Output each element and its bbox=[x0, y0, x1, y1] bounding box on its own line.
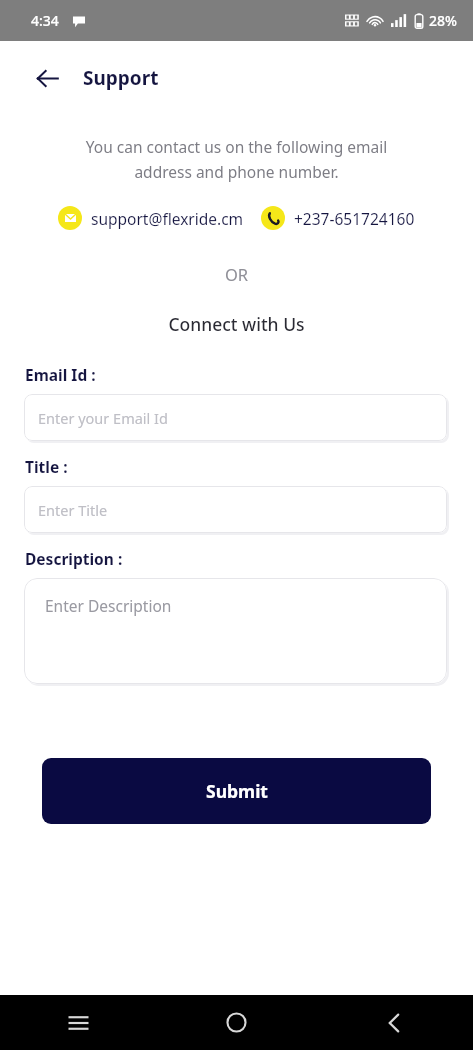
staticText: Submit bbox=[206, 779, 268, 803]
staticText: Enter your Email Id bbox=[38, 408, 168, 428]
staticText: 4:34 bbox=[31, 11, 59, 30]
button[interactable]: Recent apps bbox=[0, 995, 157, 1050]
staticText: Enter Title bbox=[38, 500, 108, 520]
button[interactable]: Home bbox=[157, 995, 315, 1050]
button[interactable]: Enter Title bbox=[24, 486, 447, 533]
button[interactable]: Back bbox=[22, 53, 72, 103]
button[interactable]: Submit bbox=[42, 758, 431, 824]
staticText: Support bbox=[83, 65, 159, 91]
staticText: Enter Description bbox=[45, 595, 172, 616]
staticText: OR bbox=[0, 263, 473, 285]
staticText: 28% bbox=[429, 11, 457, 30]
staticText: +237-651724160 bbox=[294, 208, 415, 229]
staticText: You can contact us on the following emai… bbox=[38, 136, 435, 182]
staticText: Description : bbox=[25, 548, 473, 569]
button[interactable]: Back bbox=[315, 995, 473, 1050]
button[interactable]: +237-651724160 bbox=[261, 206, 415, 230]
button[interactable]: support@flexride.cm bbox=[58, 206, 244, 230]
button[interactable]: Enter Description bbox=[24, 578, 447, 684]
button[interactable]: Enter your Email Id bbox=[24, 394, 447, 441]
staticText: Connect with Us bbox=[0, 312, 473, 336]
staticText: Email Id : bbox=[25, 364, 473, 385]
staticText: support@flexride.cm bbox=[91, 208, 244, 229]
staticText: Title : bbox=[25, 456, 473, 477]
